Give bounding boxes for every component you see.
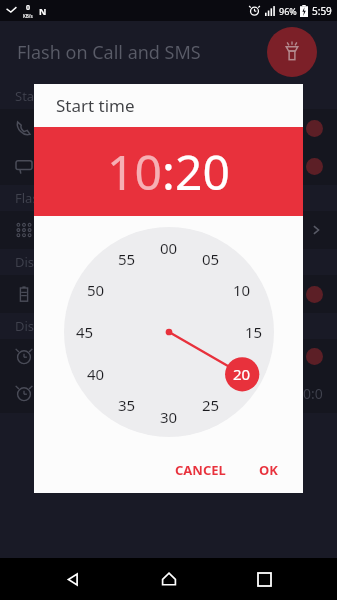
button[interactable] — [14, 109, 323, 147]
staticText: 20 — [233, 364, 251, 384]
button[interactable]: 55 — [110, 242, 144, 276]
button[interactable]: OK — [252, 455, 285, 485]
button[interactable]: Home — [147, 558, 191, 600]
button[interactable]: 45 — [68, 315, 102, 349]
staticText: KB/s — [23, 13, 33, 19]
staticText: 50 — [87, 280, 105, 300]
button[interactable]: 20 — [175, 139, 230, 204]
button[interactable]: 40 — [79, 357, 113, 391]
staticText: 30 — [160, 407, 178, 427]
staticText: : — [162, 139, 175, 204]
staticText: Stop time — [48, 384, 112, 403]
staticText: 00 — [160, 238, 178, 258]
staticText: OK — [259, 461, 278, 479]
button[interactable]: 35 — [110, 388, 144, 422]
staticText: 20 — [175, 139, 230, 204]
staticText: 10 — [233, 280, 251, 300]
button[interactable]: 10 — [225, 273, 259, 307]
staticText: Start time — [56, 94, 135, 117]
button[interactable]: 00 — [152, 231, 186, 265]
staticText: 45 — [76, 322, 94, 342]
button[interactable] — [14, 275, 323, 313]
button[interactable]: 50 — [79, 273, 113, 307]
button[interactable] — [14, 339, 323, 373]
staticText: 0 — [26, 3, 31, 13]
staticText: 10 — [107, 139, 162, 204]
staticText: CANCEL — [175, 461, 226, 479]
staticText: Start time — [15, 87, 76, 105]
staticText: N — [39, 5, 47, 17]
button[interactable]: 30 — [152, 400, 186, 434]
button[interactable]: Recent apps — [242, 558, 286, 600]
button[interactable]: Stop time — [14, 373, 323, 413]
button[interactable]: 05 — [194, 242, 228, 276]
staticText: 05 — [202, 249, 220, 269]
button[interactable]: 25 — [194, 388, 228, 422]
button[interactable]: Back — [51, 558, 95, 600]
staticText: 55 — [118, 249, 136, 269]
button[interactable]: CANCEL — [168, 455, 233, 485]
staticText: 15 — [245, 322, 263, 342]
button[interactable]: 10 — [107, 139, 162, 204]
button[interactable]: Toggle flashlight — [267, 27, 317, 77]
staticText: 40 — [87, 364, 105, 384]
button[interactable] — [14, 211, 323, 249]
button[interactable]: 20 — [225, 357, 259, 391]
button[interactable]: 15 — [237, 315, 271, 349]
staticText: Dis — [15, 253, 35, 271]
staticText: Flash — [15, 189, 47, 207]
staticText: 96% — [279, 5, 297, 17]
staticText: Flash on Call and SMS — [17, 40, 201, 65]
button[interactable] — [14, 147, 323, 185]
staticText: 25 — [202, 395, 220, 415]
staticText: Dis — [15, 317, 35, 335]
staticText: 35 — [118, 395, 136, 415]
staticText: 0:0 — [303, 384, 323, 403]
staticText: 5:59 — [312, 4, 332, 18]
